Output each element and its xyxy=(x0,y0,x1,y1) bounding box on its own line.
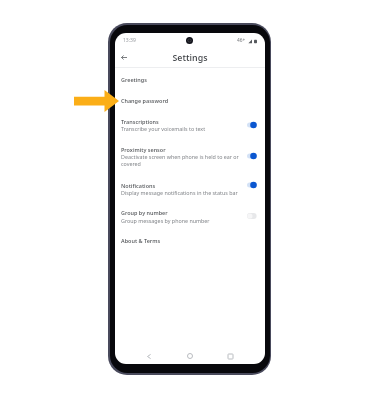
button[interactable] xyxy=(118,233,265,248)
staticText: Transcriptions xyxy=(121,118,159,125)
button[interactable]: Proximity sensor toggle xyxy=(243,149,260,163)
button[interactable] xyxy=(118,142,265,164)
button[interactable]: Transcriptions toggle xyxy=(243,118,260,132)
button[interactable]: Back xyxy=(142,349,156,363)
button[interactable]: Home xyxy=(183,349,197,363)
button[interactable]: Back xyxy=(117,50,131,64)
staticText: Group messages by phone number xyxy=(121,217,240,224)
staticText: Display message notifications in the sta… xyxy=(121,189,240,196)
button[interactable] xyxy=(118,72,265,87)
button[interactable] xyxy=(118,205,265,227)
button[interactable]: Recent apps xyxy=(223,349,237,363)
staticText: Transcribe your voicemails to text xyxy=(121,125,240,132)
staticText: 46+ xyxy=(237,37,246,44)
button[interactable] xyxy=(118,113,265,135)
button[interactable]: Group by number toggle xyxy=(243,209,260,223)
staticText: Proximity sensor xyxy=(121,146,166,153)
staticText: 13:39 xyxy=(123,37,136,44)
staticText: About & Terms xyxy=(121,237,161,244)
button[interactable] xyxy=(118,92,265,107)
staticText: Notifications xyxy=(121,182,156,189)
staticText: Greetings xyxy=(121,76,147,83)
staticText: Group by number xyxy=(121,209,168,216)
staticText: Change password xyxy=(121,97,169,104)
button[interactable] xyxy=(118,177,265,199)
button[interactable]: Notifications toggle xyxy=(243,178,260,192)
staticText: Deactivate screen when phone is held to … xyxy=(121,153,240,167)
staticText: Settings xyxy=(172,52,208,64)
